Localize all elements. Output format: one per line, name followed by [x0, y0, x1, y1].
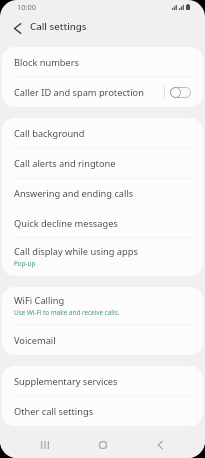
- staticText: Call alerts and ringtone: [14, 157, 116, 170]
- staticText: WiFi Calling: [14, 294, 65, 307]
- button[interactable]: Voicemail: [2, 325, 203, 355]
- staticText: Answering and ending calls: [14, 187, 134, 200]
- button[interactable]: Back: [146, 431, 174, 458]
- staticText: Call display while using apps: [14, 245, 138, 258]
- button[interactable]: Call background: [2, 118, 203, 148]
- button[interactable]: Block numbers: [2, 47, 203, 77]
- staticText: Other call settings: [14, 405, 94, 418]
- staticText: Use Wi-Fi to make and receive calls.: [14, 308, 120, 317]
- button[interactable]: Home: [89, 431, 117, 458]
- button[interactable]: Call display while using apps: [2, 238, 203, 276]
- staticText: 10:00: [17, 2, 36, 12]
- button[interactable]: Quick decline messages: [2, 208, 203, 238]
- button[interactable]: WiFi Calling: [2, 287, 203, 325]
- staticText: Block numbers: [14, 56, 80, 69]
- staticText: Voicemail: [14, 334, 56, 347]
- staticText: Call background: [14, 127, 85, 140]
- button[interactable]: Call alerts and ringtone: [2, 148, 203, 178]
- staticText: Supplementary services: [14, 375, 118, 388]
- button[interactable]: Caller ID and spam protection: [2, 77, 203, 107]
- staticText: Pop-up: [14, 259, 36, 268]
- button[interactable]: Supplementary services: [2, 366, 203, 396]
- staticText: Call settings: [30, 20, 87, 33]
- button[interactable]: Caller ID and spam protection toggle: [170, 87, 191, 98]
- button[interactable]: Answering and ending calls: [2, 178, 203, 208]
- staticText: Quick decline messages: [14, 217, 118, 230]
- button[interactable]: Other call settings: [2, 396, 203, 426]
- button[interactable]: Back: [7, 18, 27, 38]
- staticText: Caller ID and spam protection: [14, 86, 144, 99]
- button[interactable]: Recent apps: [31, 431, 59, 458]
